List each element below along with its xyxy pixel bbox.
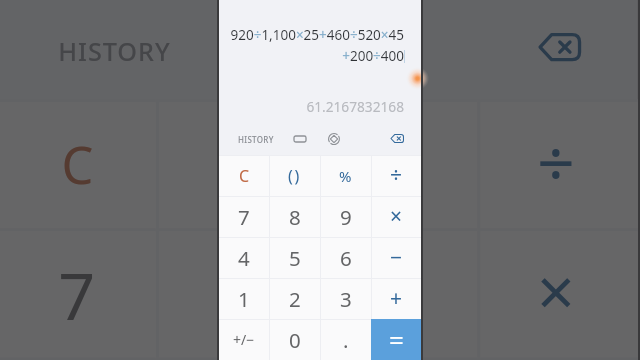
staticText: 2 [289, 285, 301, 313]
staticText: ÷ [537, 118, 578, 209]
staticText: HISTORY [238, 134, 274, 145]
staticText: 6 [340, 244, 352, 272]
staticText: − [390, 243, 403, 272]
staticText: 920÷1,100×25+460÷520×45 +200÷400 [227, 26, 404, 65]
staticText: × [390, 202, 403, 231]
staticText: 8 [289, 203, 301, 231]
staticText: 1 [238, 285, 250, 313]
button[interactable]: 8 [156, 228, 317, 357]
button[interactable]: () [156, 99, 317, 228]
button[interactable]: 2 [269, 278, 320, 319]
staticText: C [61, 131, 96, 200]
staticText: 0 [289, 326, 301, 354]
button[interactable]: = [371, 319, 422, 360]
staticText: 3 [340, 285, 352, 313]
staticText: () [288, 165, 301, 187]
button[interactable]: Unit converter [321, 126, 347, 152]
button[interactable]: C [0, 99, 156, 228]
staticText: 5 [289, 244, 301, 272]
staticText: +/− [233, 330, 255, 349]
staticText: 7 [238, 203, 250, 231]
staticText: 7 [58, 250, 96, 338]
button[interactable]: 5 [156, 357, 317, 360]
staticText: 9 [380, 250, 417, 338]
staticText: HISTORY [58, 33, 172, 67]
button[interactable]: () [269, 155, 320, 196]
button[interactable]: 8 [269, 196, 320, 237]
button[interactable]: Unit converter [320, 8, 402, 90]
button[interactable]: ÷ [477, 99, 638, 228]
button[interactable]: 3 [320, 278, 371, 319]
button[interactable]: 0 [269, 319, 320, 360]
button[interactable]: × [371, 196, 422, 237]
button[interactable]: . [320, 319, 371, 360]
button[interactable]: 1 [219, 278, 269, 319]
staticText: + [390, 284, 403, 313]
button[interactable]: Keypad [287, 126, 313, 152]
button[interactable]: C [219, 155, 269, 196]
button[interactable]: − [371, 237, 422, 278]
button[interactable]: HISTORY [58, 8, 172, 90]
button[interactable]: HISTORY [238, 126, 274, 152]
staticText: % [376, 134, 417, 197]
button[interactable]: % [317, 99, 477, 228]
staticText: × [537, 247, 578, 338]
button[interactable]: 5 [269, 237, 320, 278]
staticText: C [239, 165, 250, 187]
button[interactable]: 7 [0, 228, 156, 357]
button[interactable]: +/− [219, 319, 269, 360]
button[interactable]: 4 [219, 237, 269, 278]
button[interactable]: 6 [317, 357, 477, 360]
button[interactable]: × [477, 228, 638, 357]
button[interactable]: Backspace [512, 0, 606, 93]
staticText: ÷ [390, 161, 403, 190]
staticText: . [343, 326, 349, 354]
button[interactable]: 6 [320, 237, 371, 278]
staticText: () [216, 131, 257, 200]
staticText: 61.2167832168 [306, 97, 404, 116]
button[interactable]: + [371, 278, 422, 319]
button[interactable]: Keypad [213, 8, 294, 90]
staticText: 4 [238, 244, 250, 272]
button[interactable]: Backspace [382, 123, 412, 153]
button[interactable]: % [320, 155, 371, 196]
button[interactable]: ÷ [371, 155, 422, 196]
staticText: % [339, 166, 352, 186]
button[interactable]: 9 [317, 228, 477, 357]
button[interactable]: 9 [320, 196, 371, 237]
staticText: 8 [219, 250, 257, 338]
button[interactable]: 7 [219, 196, 269, 237]
staticText: = [389, 322, 404, 357]
staticText: 9 [340, 203, 352, 231]
